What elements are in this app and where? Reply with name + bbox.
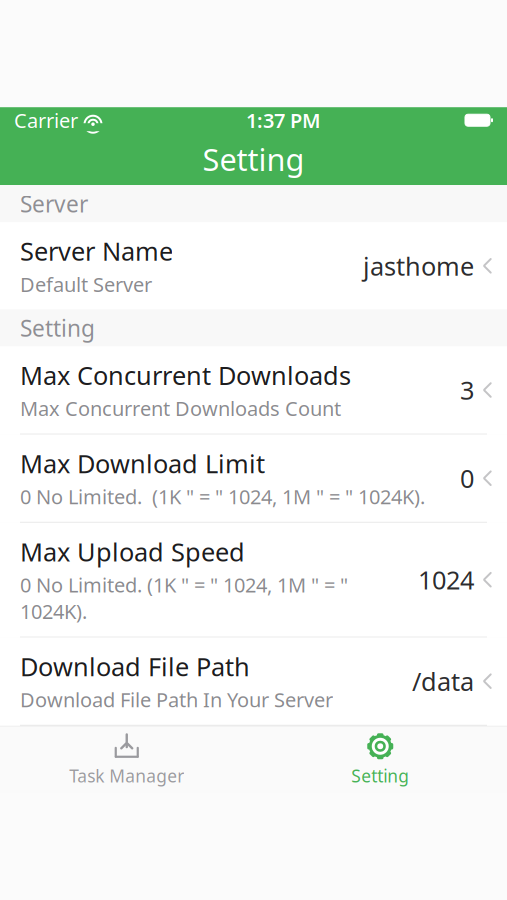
staticText: Carrier: [14, 107, 78, 133]
staticText: Max Concurrent Downloads: [20, 358, 351, 392]
button[interactable]: Server Name: [0, 222, 507, 309]
staticText: 0: [460, 461, 474, 495]
button[interactable]: Max Concurrent Downloads: [0, 346, 507, 435]
staticText: Setting: [202, 139, 304, 180]
staticText: /data: [412, 664, 474, 698]
staticText: Max Download Limit: [20, 447, 265, 480]
button[interactable]: Download File Path: [0, 638, 507, 726]
staticText: Max Concurrent Downloads Count: [20, 395, 341, 422]
staticText: Download File Path In Your Server: [20, 686, 333, 713]
staticText: jasthome: [363, 249, 474, 283]
button[interactable]: Max Upload Speed: [0, 523, 507, 638]
staticText: 3: [460, 373, 474, 407]
staticText: 1024: [418, 563, 474, 596]
button[interactable]: Setting: [0, 133, 507, 185]
staticText: 1:37 PM: [246, 107, 321, 133]
staticText: Setting: [20, 313, 95, 343]
staticText: Server Name: [20, 234, 173, 268]
staticText: Download File Path: [20, 650, 250, 683]
staticText: 0 No Limited. (1K " = " 1024, 1M " = " 1…: [20, 571, 348, 625]
button[interactable]: Max Download Limit: [0, 435, 507, 523]
button[interactable]: Task Manager: [0, 724, 253, 795]
staticText: Server: [20, 189, 88, 219]
staticText: Setting: [351, 764, 409, 787]
staticText: Default Server: [20, 271, 152, 297]
staticText: Max Upload Speed: [20, 535, 245, 568]
staticText: 0 No Limited. (1K " = " 1024, 1M " = " 1…: [20, 483, 425, 510]
staticText: Task Manager: [69, 764, 184, 787]
button[interactable]: Setting: [253, 724, 507, 795]
